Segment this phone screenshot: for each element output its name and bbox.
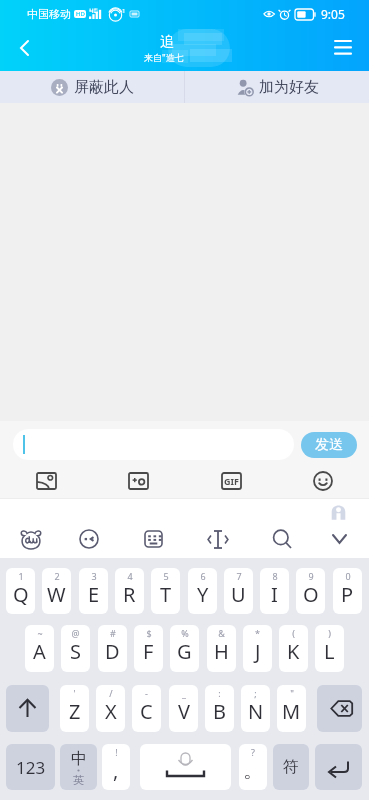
button[interactable]: Search (263, 520, 301, 558)
button[interactable]: ( (279, 625, 308, 672)
staticText: 5 (163, 570, 169, 582)
staticText: 追 (160, 33, 174, 51)
staticText: 发送 (315, 436, 343, 454)
staticText: Q (13, 581, 29, 608)
button[interactable]: 2 (42, 568, 71, 614)
staticText: 8 (272, 570, 278, 582)
button[interactable]: * (243, 625, 272, 672)
staticText: E (88, 581, 100, 608)
button[interactable]: & (207, 625, 236, 672)
button[interactable] (140, 744, 231, 790)
staticText: @ (71, 627, 80, 639)
button[interactable]: # (98, 625, 127, 672)
button[interactable]: Keyboard (134, 520, 172, 558)
button[interactable]: Photo (23, 468, 69, 494)
staticText: " (290, 687, 294, 699)
staticText: 9 (308, 570, 314, 582)
button[interactable]: / (96, 685, 125, 732)
staticText: 123 (16, 756, 46, 779)
staticText: B (213, 698, 226, 725)
button[interactable]: 4 (115, 568, 144, 614)
button[interactable]: 屏蔽此人 (0, 71, 184, 103)
staticText: 7 (236, 570, 242, 582)
button[interactable]: : (205, 685, 234, 732)
staticText: 1 (18, 570, 24, 582)
staticText: 0 (345, 570, 351, 582)
staticText: $ (146, 627, 152, 639)
button[interactable]: 3 (79, 568, 108, 614)
staticText: H (214, 638, 229, 665)
staticText: GIF (224, 475, 239, 487)
staticText: S (70, 638, 81, 665)
staticText: 3 (91, 570, 97, 582)
staticText: - (145, 687, 148, 699)
button[interactable]: 发送 (301, 432, 357, 458)
staticText: ; (254, 687, 257, 699)
button[interactable]: ~ (25, 625, 54, 672)
button[interactable]: Menu (325, 28, 369, 71)
staticText: 中国移动 (27, 7, 71, 21)
staticText: ! (115, 746, 118, 758)
button[interactable]: 9 (296, 568, 325, 614)
staticText: X (105, 698, 117, 725)
staticText: Y (197, 581, 209, 608)
button[interactable] (13, 429, 294, 460)
button[interactable]: GIF (208, 468, 254, 494)
staticText: Z (69, 698, 81, 725)
button[interactable]: 中 (60, 744, 97, 790)
button[interactable]: _ (169, 685, 198, 732)
staticText: ? (251, 746, 255, 758)
staticText: 加为好友 (259, 78, 319, 97)
button[interactable] (317, 685, 362, 732)
button[interactable]: 7 (224, 568, 253, 614)
staticText: * (255, 627, 260, 639)
staticText: % (181, 627, 189, 639)
button[interactable]: Emoticon (70, 520, 108, 558)
button[interactable]: ? (239, 744, 267, 790)
button[interactable]: 5 (151, 568, 180, 614)
button[interactable]: - (132, 685, 161, 732)
staticText: G (177, 638, 192, 665)
staticText: 4 (127, 570, 133, 582)
staticText: ~ (37, 627, 43, 639)
staticText: J (255, 638, 261, 665)
button[interactable]: 6 (188, 568, 217, 614)
staticText: ( (292, 627, 295, 639)
button[interactable]: Baidu input (12, 520, 50, 558)
staticText: / (109, 687, 113, 699)
staticText: T (160, 581, 172, 608)
button[interactable]: $ (134, 625, 163, 672)
button[interactable]: @ (61, 625, 90, 672)
staticText: R (123, 581, 136, 608)
button[interactable] (315, 744, 362, 790)
staticText: , (113, 757, 119, 784)
button[interactable]: Emoji (300, 468, 346, 494)
staticText: 9:05 (321, 6, 345, 22)
button[interactable]: ! (102, 744, 130, 790)
button[interactable]: ' (60, 685, 89, 732)
button[interactable]: Camera (115, 468, 161, 494)
button[interactable]: ; (241, 685, 270, 732)
button[interactable]: " (277, 685, 306, 732)
button[interactable]: 1 (6, 568, 35, 614)
button[interactable]: 0 (333, 568, 362, 614)
button[interactable]: % (170, 625, 199, 672)
staticText: V (178, 698, 190, 725)
staticText: D (105, 638, 120, 665)
button[interactable]: 123 (6, 744, 55, 790)
button[interactable] (6, 685, 49, 732)
staticText: # (110, 627, 116, 639)
button[interactable]: Hide keyboard (320, 520, 358, 558)
staticText: I (271, 581, 278, 608)
button[interactable]: Back (0, 28, 44, 71)
staticText: M (282, 698, 301, 725)
staticText: ) (328, 627, 331, 639)
button[interactable]: 8 (260, 568, 289, 614)
staticText: 。 (243, 758, 263, 783)
button[interactable]: 加为好友 (185, 71, 369, 103)
staticText: A (33, 638, 46, 665)
button[interactable]: 符 (273, 744, 309, 790)
button[interactable]: ) (315, 625, 344, 672)
button[interactable]: Move cursor (199, 520, 237, 558)
staticText: C (140, 698, 153, 725)
